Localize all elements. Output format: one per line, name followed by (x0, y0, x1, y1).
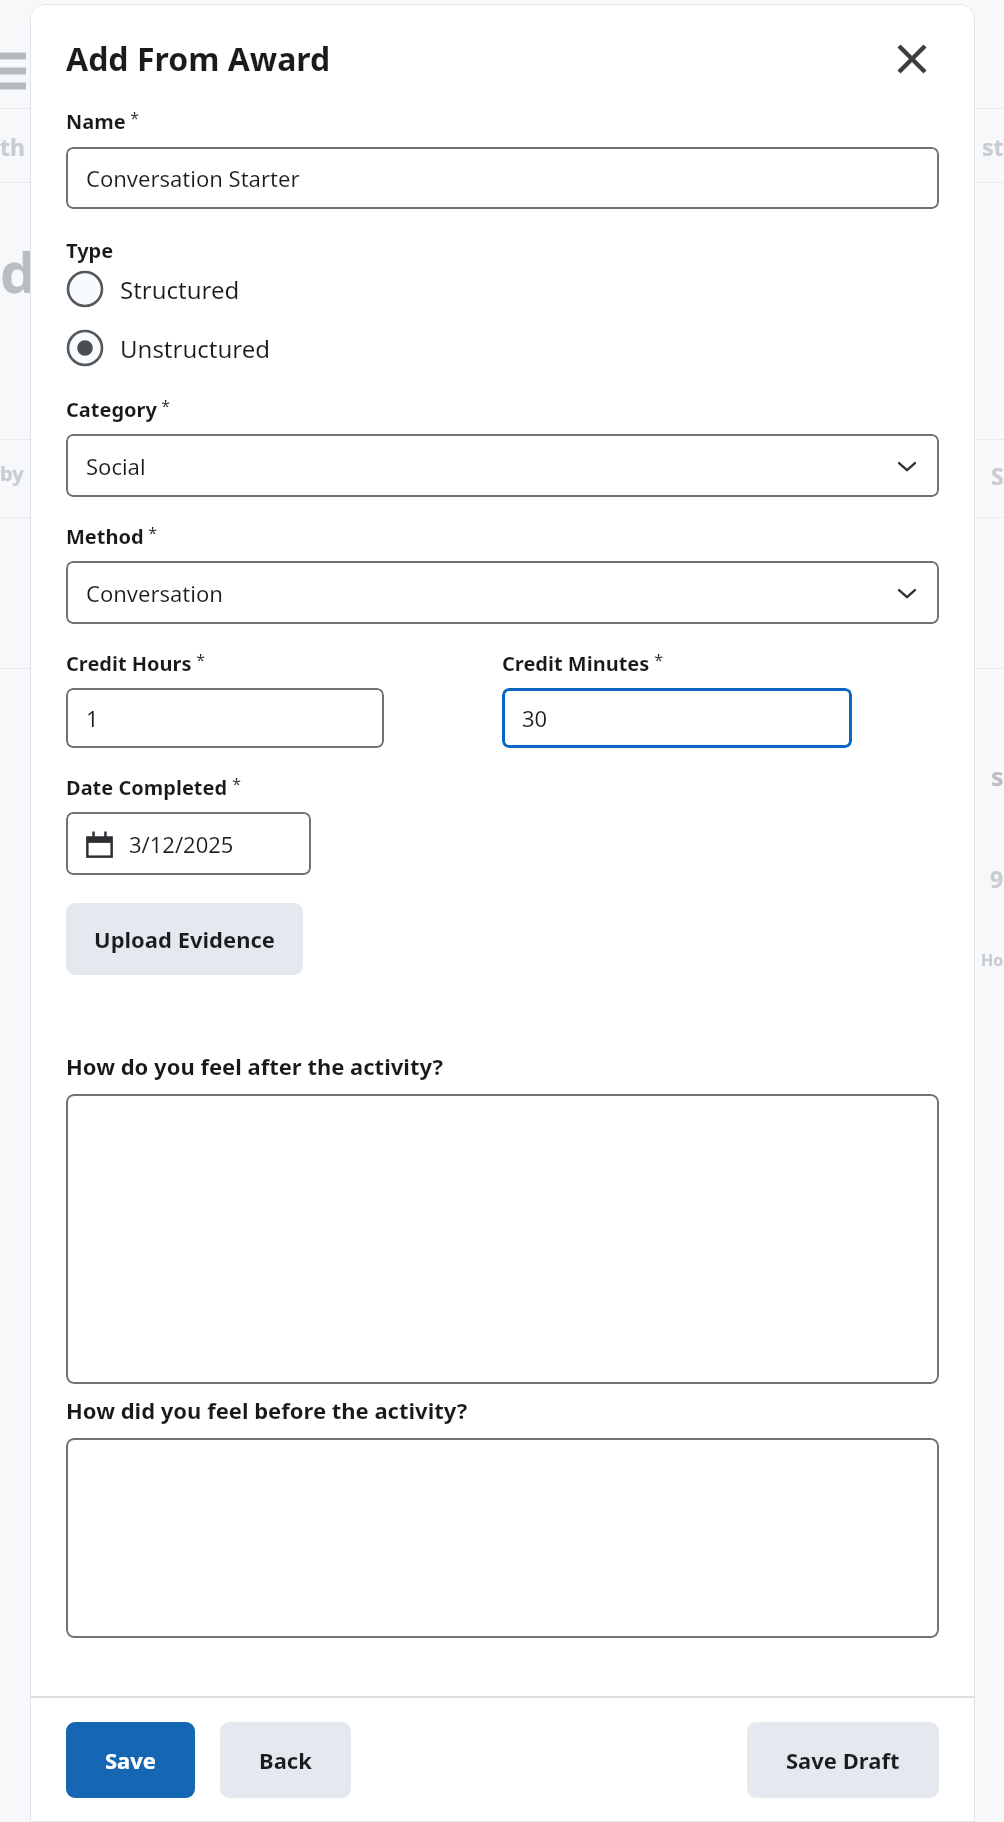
staticText: Credit Hours (66, 650, 192, 677)
staticText: * (126, 107, 139, 129)
button[interactable]: Save (66, 1722, 195, 1798)
staticText: 30 (522, 703, 548, 733)
staticText: Date Completed (66, 774, 228, 801)
button[interactable]: Upload Evidence (66, 903, 303, 975)
staticText: st (982, 131, 1004, 162)
staticText: by (0, 460, 24, 487)
staticText: * (192, 649, 205, 671)
button[interactable]: Structured (66, 265, 939, 313)
staticText: * (650, 649, 663, 671)
staticText: Back (259, 1745, 312, 1775)
staticText: d (0, 233, 36, 309)
staticText: Method (66, 523, 144, 550)
staticText: Structured (120, 273, 240, 306)
button[interactable]: Social (66, 434, 939, 497)
button[interactable] (66, 1438, 939, 1638)
staticText: th (0, 131, 25, 162)
staticText: Name (66, 108, 126, 135)
button[interactable]: 1 (66, 688, 384, 748)
staticText: Add From Award (66, 37, 331, 81)
staticText: Type (66, 237, 114, 264)
staticText: 9 (990, 863, 1004, 894)
button[interactable]: Save Draft (747, 1722, 939, 1798)
staticText: Conversation (86, 578, 223, 608)
staticText: Conversation Starter (86, 163, 300, 193)
staticText: * (144, 522, 157, 544)
staticText: 3/12/2025 (129, 829, 234, 859)
staticText: Save (105, 1745, 156, 1775)
staticText: Credit Minutes (502, 650, 650, 677)
button[interactable]: Close (885, 32, 939, 86)
staticText: Unstructured (120, 332, 271, 365)
staticText: Social (86, 451, 146, 481)
staticText: 1 (86, 703, 99, 733)
button[interactable]: Conversation Starter (66, 147, 939, 209)
staticText: S (991, 460, 1004, 491)
staticText: * (228, 773, 241, 795)
staticText: Save Draft (786, 1745, 900, 1775)
button[interactable]: Back (220, 1722, 351, 1798)
button[interactable]: Unstructured (66, 324, 939, 372)
staticText: Upload Evidence (94, 924, 275, 954)
button[interactable]: Conversation (66, 561, 939, 624)
staticText: How did you feel before the activity? (66, 1395, 468, 1425)
button[interactable] (66, 1094, 939, 1384)
staticText: Category (66, 396, 157, 423)
button[interactable]: 30 (502, 688, 852, 748)
staticText: Ho (981, 949, 1004, 971)
staticText: s (991, 759, 1004, 793)
staticText: How do you feel after the activity? (66, 1051, 443, 1081)
staticText: * (157, 395, 170, 417)
button[interactable]: 3/12/2025 (66, 812, 311, 875)
